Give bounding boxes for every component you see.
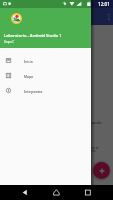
button[interactable]: Add (93, 162, 110, 179)
button[interactable]: Integrantes (0, 83, 91, 98)
staticText: Integrantes (24, 89, 43, 93)
staticText: Inicio (24, 59, 33, 63)
button[interactable]: Inicio (0, 53, 91, 68)
staticText: 12:01 (98, 1, 110, 7)
button[interactable]: More options (105, 13, 113, 21)
staticText: opciones del menu lateral izquierdo, asi… (6, 145, 99, 151)
staticText: Laboratorio - Android Studio 1 (4, 33, 62, 38)
staticText: elaborada por los integrantes del grupo … (6, 120, 102, 126)
button[interactable]: Mapa (0, 68, 91, 83)
staticText: Grupo C (4, 40, 15, 44)
staticText: Laboratorio - Android Studio 1 (14, 14, 81, 20)
staticText: navegando entre las secciones de la apli… (6, 148, 96, 154)
staticText: Mapa (24, 74, 33, 78)
